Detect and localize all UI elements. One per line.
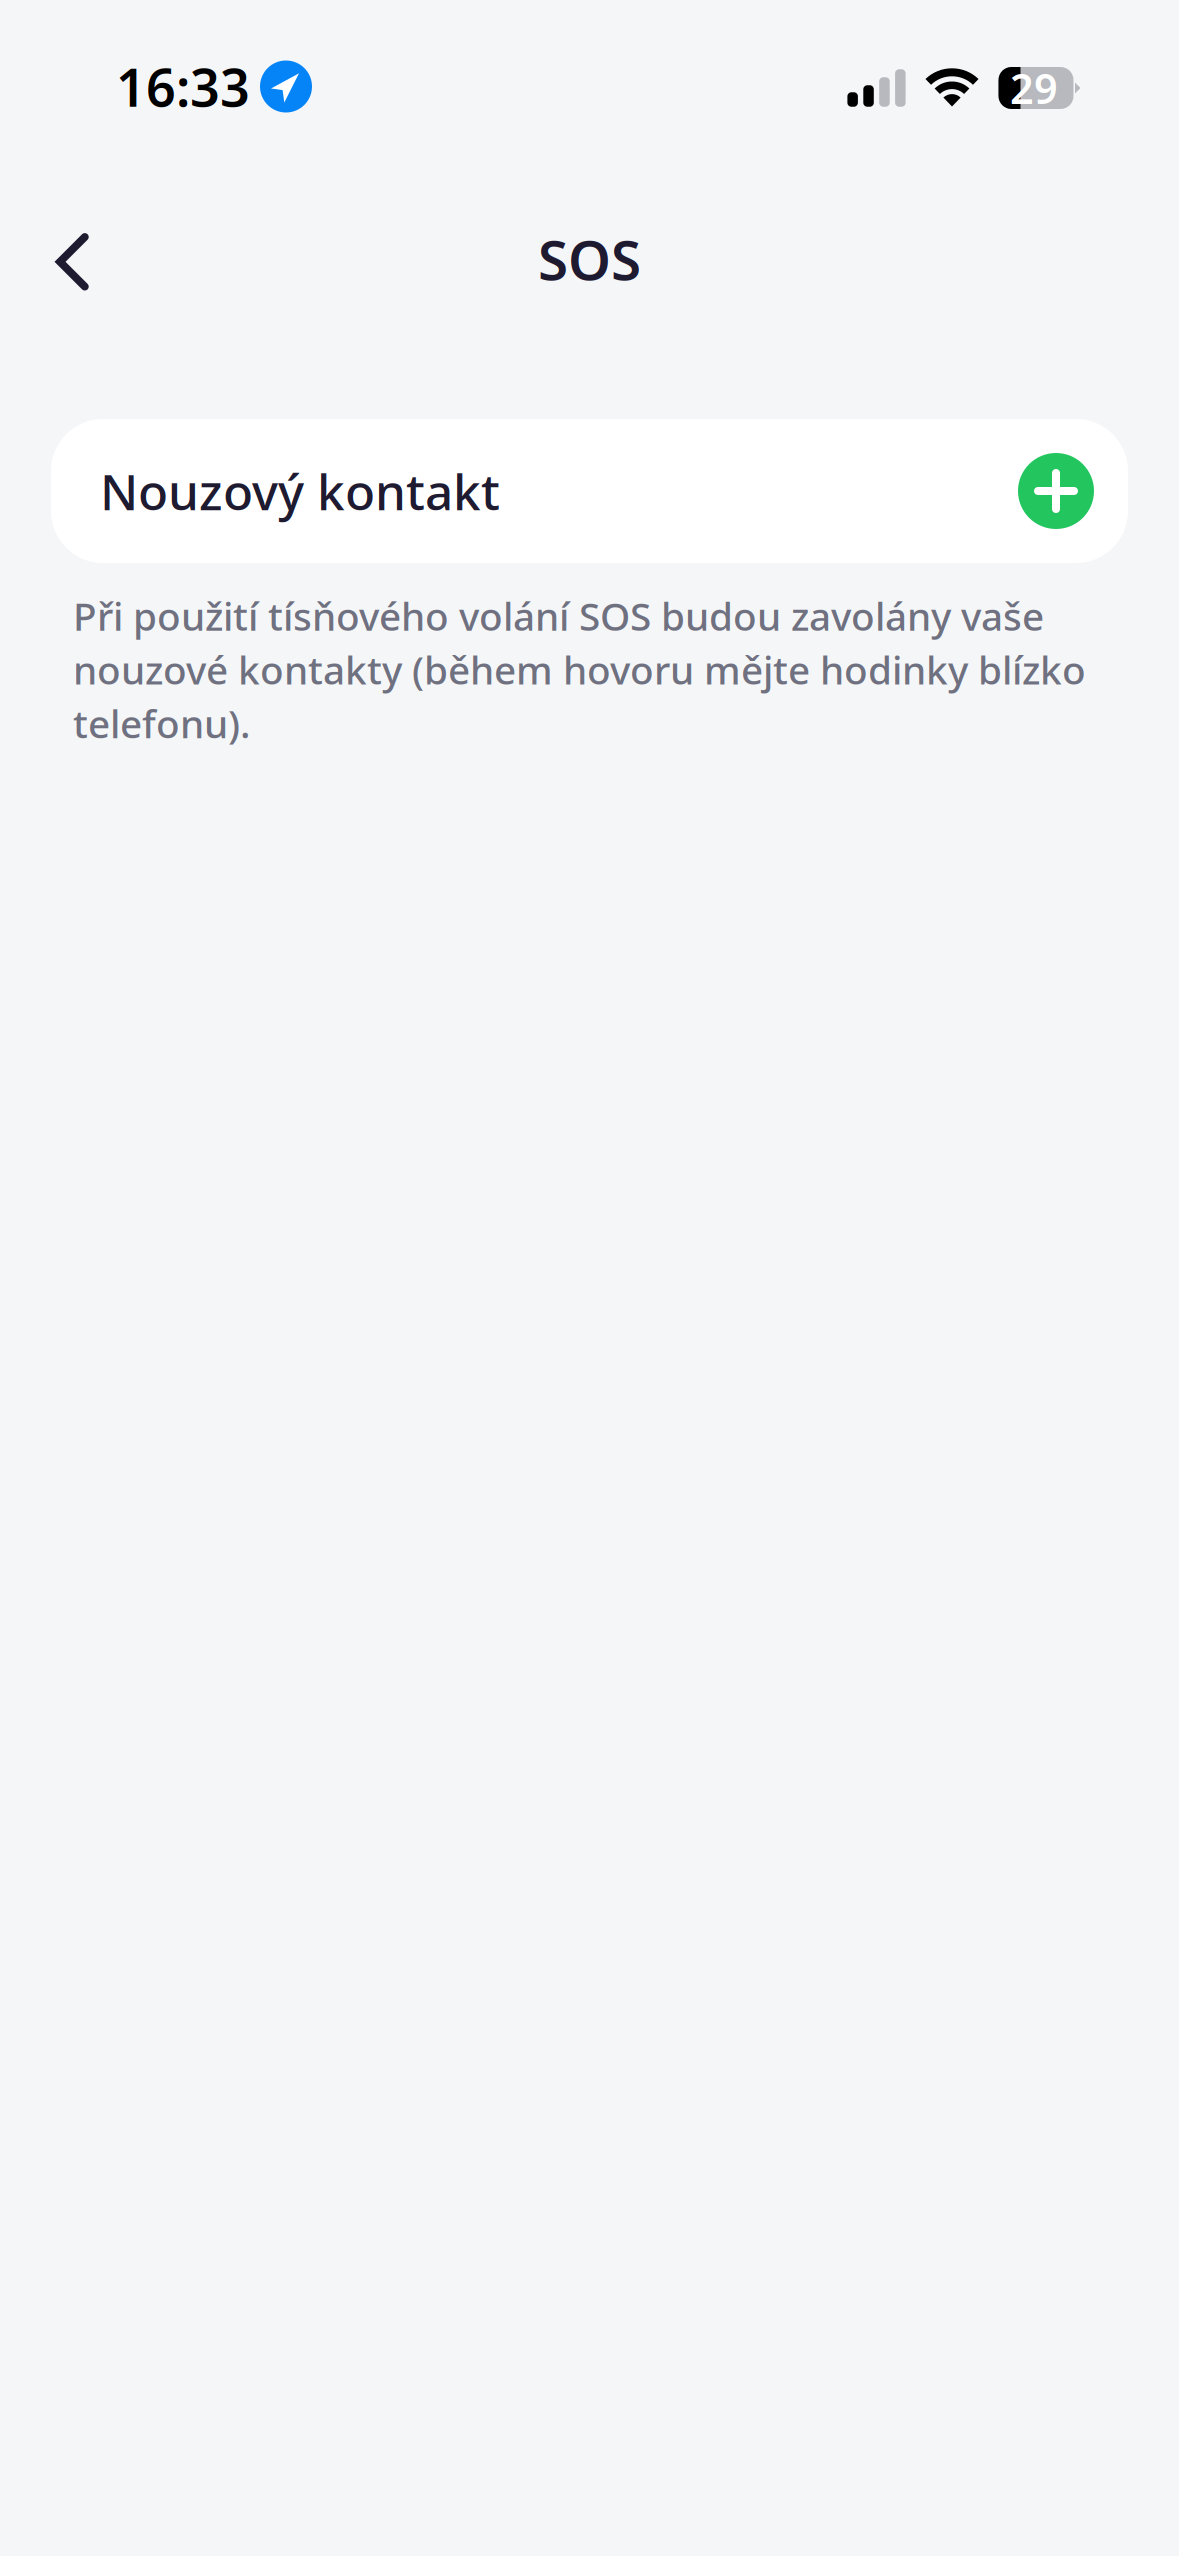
staticText: Nouzový kontakt	[100, 458, 500, 524]
staticText: SOS	[538, 223, 641, 295]
button[interactable]: Přidat nouzový kontakt	[1018, 453, 1094, 529]
staticText: 16:33	[116, 52, 250, 121]
staticText: 29	[1010, 61, 1058, 115]
staticText: Při použití tísňového volání SOS budou z…	[73, 590, 1086, 749]
button[interactable]: Back	[26, 200, 119, 318]
